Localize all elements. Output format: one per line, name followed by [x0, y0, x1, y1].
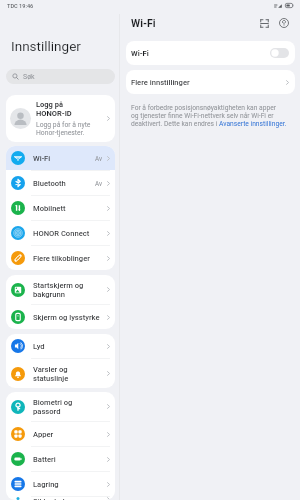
staticText: For å forbedre posisjonsnøyaktigheten ka… [131, 104, 287, 128]
staticText: Innstillinger [11, 38, 81, 54]
staticText: Biometri og passord [33, 398, 106, 416]
staticText: Sikkerhet [33, 497, 106, 500]
button[interactable]: Biometri og passord [6, 392, 115, 421]
staticText: Bluetooth [33, 179, 95, 188]
button[interactable]: Lagring [6, 472, 115, 496]
button[interactable]: Bluetooth [6, 171, 115, 195]
button[interactable]: Flere innstillinger [126, 70, 295, 94]
button[interactable]: Skjerm og lysstyrke [6, 305, 115, 329]
button[interactable]: Apper [6, 422, 115, 446]
staticText: Lagring [33, 480, 106, 489]
staticText: Skjerm og lysstyrke [33, 313, 106, 322]
button[interactable]: Wi-Fi [6, 146, 115, 170]
button[interactable]: Scan QR code [257, 16, 271, 30]
button[interactable]: Søk [6, 69, 115, 84]
staticText: Wi-Fi [33, 154, 95, 163]
button[interactable]: Batteri [6, 447, 115, 471]
staticText: TDC 19:46 [7, 3, 34, 10]
staticText: Logg på for å nyte Honor-tjenester. [36, 121, 91, 137]
staticText: Wi-Fi [131, 49, 149, 58]
staticText: Mobilnett [33, 204, 106, 213]
button[interactable]: HONOR Connect [6, 221, 115, 245]
button[interactable]: Logg på HONOR-ID [6, 95, 115, 142]
staticText: Startskjerm og bakgrunn [33, 281, 106, 299]
staticText: Apper [33, 430, 106, 439]
staticText: Søk [23, 73, 35, 81]
button[interactable]: Lyd [6, 334, 115, 358]
button[interactable]: Varsler og statuslinje [6, 359, 115, 388]
staticText: Batteri [33, 455, 106, 464]
staticText: Lyd [33, 342, 106, 351]
button[interactable]: Help [277, 16, 291, 30]
button[interactable]: Mobilnett [6, 196, 115, 220]
button[interactable]: Wi-Fi [126, 41, 295, 65]
button[interactable]: Startskjerm og bakgrunn [6, 275, 115, 304]
button[interactable]: Sikkerhet [6, 497, 115, 500]
staticText: Wi-Fi [131, 17, 156, 29]
staticText: Av [95, 155, 103, 162]
staticText: Varsler og statuslinje [33, 365, 106, 383]
staticText: Flere innstillinger [131, 78, 190, 87]
button[interactable]: Flere tilkoblinger [6, 246, 115, 270]
staticText: Av [95, 180, 103, 187]
staticText: Logg på HONOR-ID [36, 100, 72, 118]
staticText: HONOR Connect [33, 229, 106, 238]
staticText: Flere tilkoblinger [33, 254, 106, 263]
